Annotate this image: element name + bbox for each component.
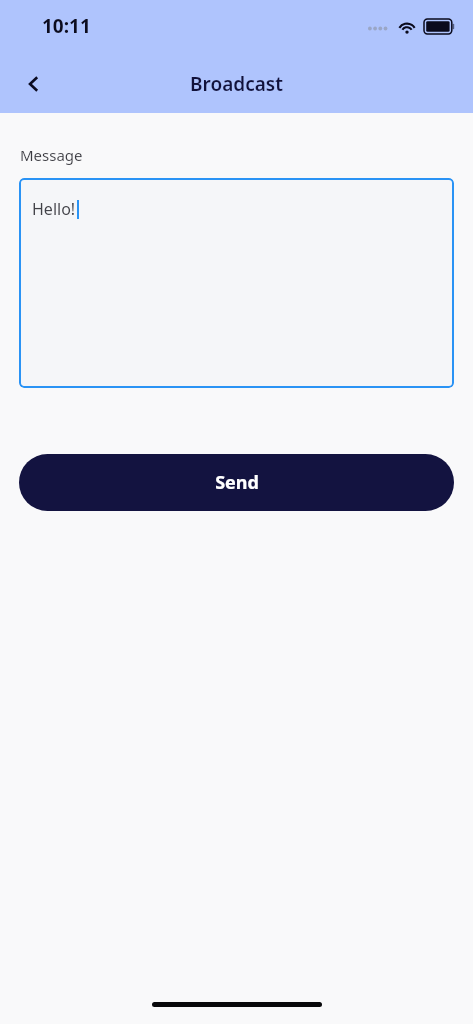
button[interactable]: Send <box>19 454 454 511</box>
staticText: 10:11 <box>42 13 91 39</box>
button[interactable]: Hello! <box>19 178 454 388</box>
staticText: Broadcast <box>190 71 283 97</box>
staticText: Send <box>215 470 259 495</box>
button[interactable]: Back <box>12 62 56 106</box>
staticText: Message <box>20 145 83 165</box>
staticText: Hello! <box>32 198 76 220</box>
